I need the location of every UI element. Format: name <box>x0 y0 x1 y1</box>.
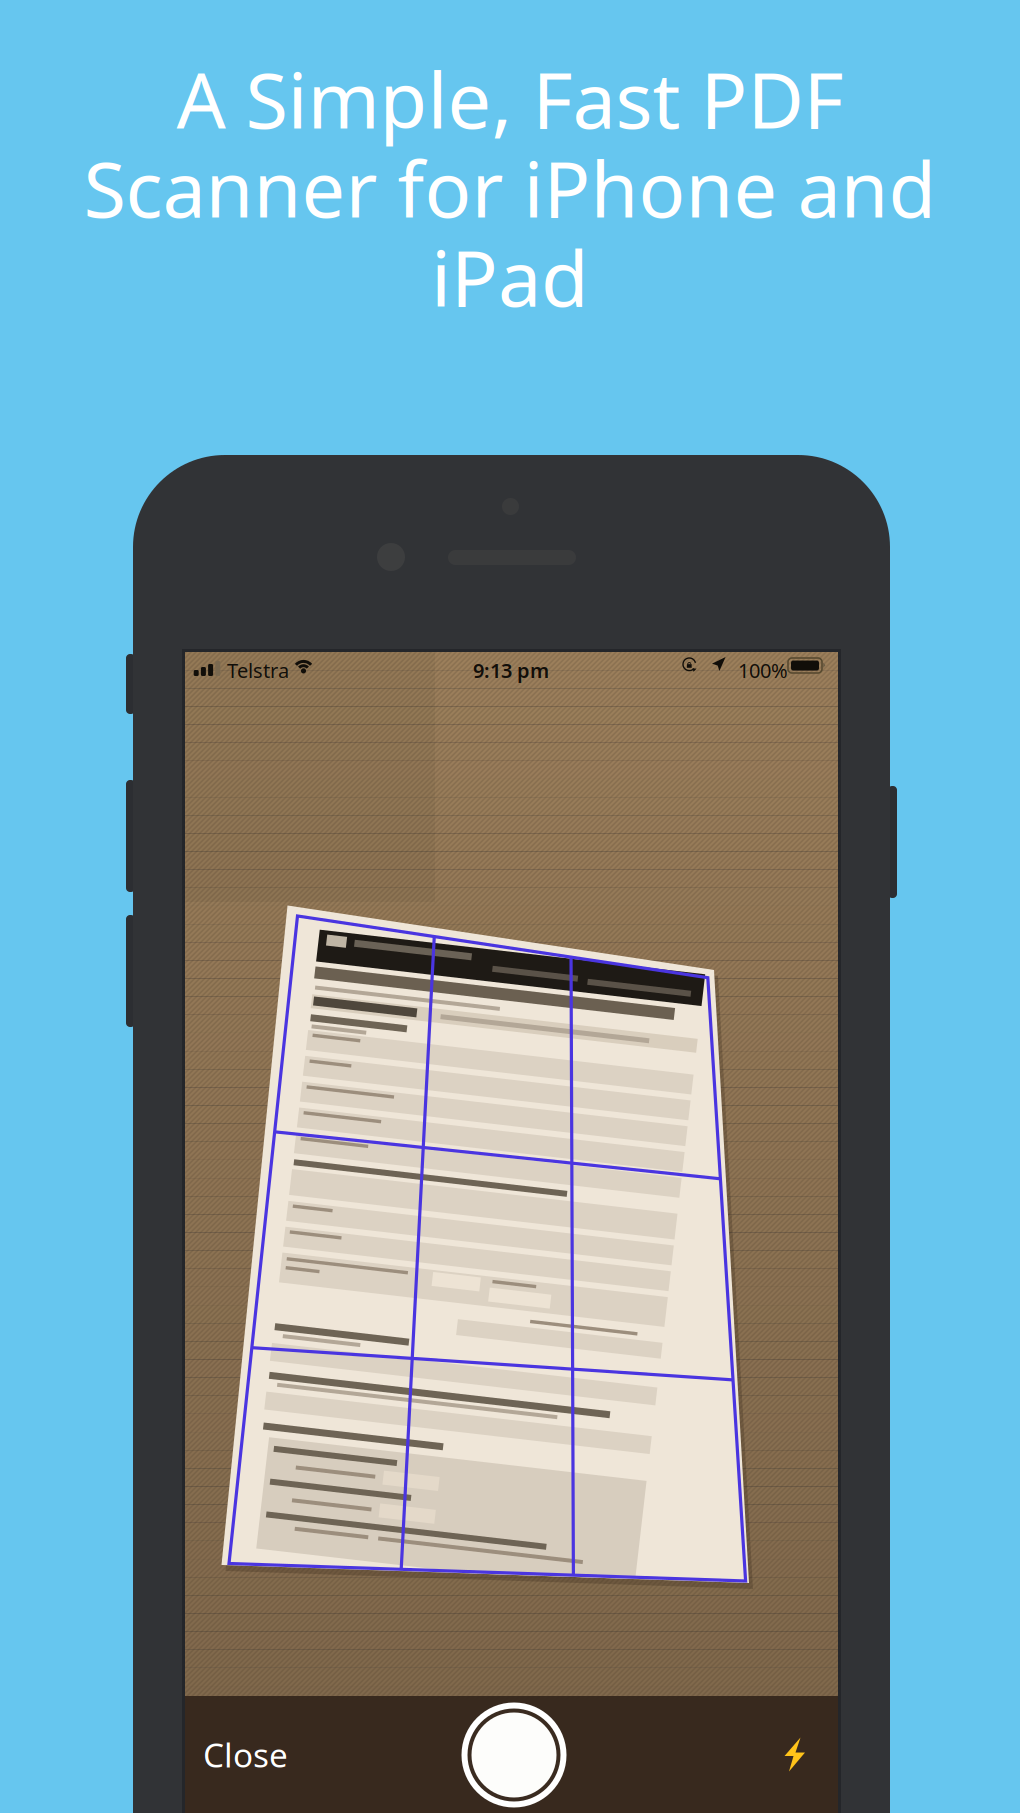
staticText: Telstra <box>227 657 289 684</box>
staticText: A Simple, Fast PDF <box>176 47 843 150</box>
staticText: iPad <box>431 225 589 328</box>
staticText: 100% <box>738 657 788 684</box>
staticText: Scanner for iPhone and <box>83 136 936 239</box>
button[interactable]: Close <box>203 1696 313 1813</box>
staticText: Close <box>203 1732 288 1777</box>
button[interactable]: Take photo <box>460 1701 568 1809</box>
button[interactable]: Flash <box>758 1696 832 1813</box>
staticText: 9:13 pm <box>473 657 549 684</box>
